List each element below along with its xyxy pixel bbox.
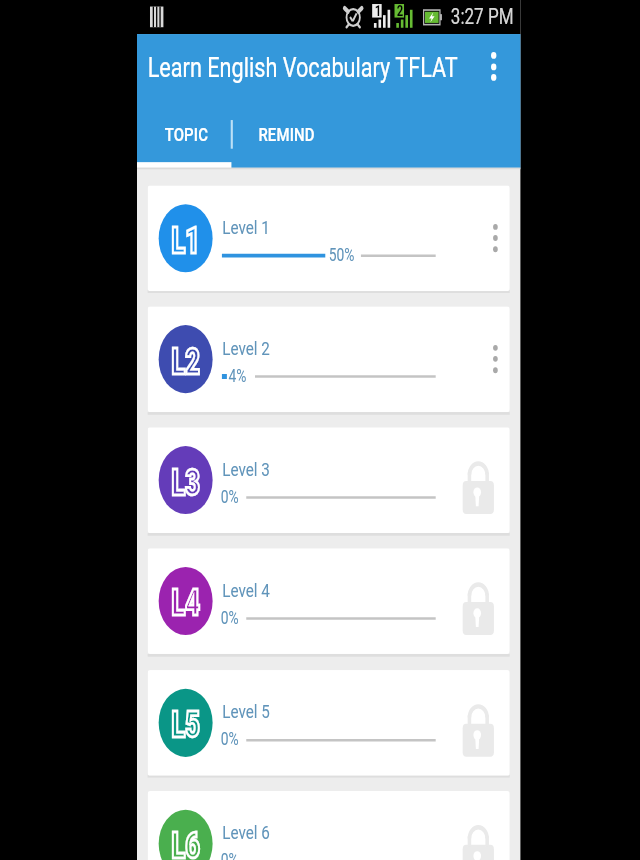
staticText: TOPIC bbox=[165, 124, 209, 146]
button[interactable]: L2 bbox=[148, 306, 510, 412]
staticText: REMIND bbox=[258, 124, 315, 146]
staticText: Level 4 bbox=[222, 579, 270, 601]
button[interactable]: L5 bbox=[148, 670, 510, 776]
staticText: Level 1 bbox=[222, 216, 270, 238]
staticText: Level 3 bbox=[222, 458, 270, 480]
button[interactable]: TOPIC bbox=[137, 133, 231, 202]
staticText: 1 bbox=[375, 3, 382, 20]
staticText: 50% bbox=[329, 245, 355, 265]
staticText: 0% bbox=[221, 486, 239, 507]
button[interactable]: Locked bbox=[463, 704, 494, 757]
staticText: Level 5 bbox=[222, 700, 270, 723]
staticText: 0% bbox=[221, 850, 239, 860]
button[interactable]: L3 bbox=[148, 427, 510, 533]
staticText: L4 bbox=[171, 580, 200, 624]
button[interactable]: L6 bbox=[148, 791, 510, 860]
staticText: 3:27 PM bbox=[451, 4, 514, 30]
button[interactable]: Locked bbox=[463, 825, 494, 860]
button[interactable]: Locked bbox=[463, 461, 494, 514]
staticText: 0% bbox=[221, 607, 239, 628]
button[interactable]: Options bbox=[478, 212, 510, 264]
button[interactable]: L1 bbox=[148, 185, 510, 291]
button[interactable]: Locked bbox=[463, 582, 494, 635]
button[interactable]: Options bbox=[478, 333, 510, 385]
button[interactable]: More options bbox=[476, 43, 511, 111]
staticText: L3 bbox=[171, 460, 200, 503]
staticText: L1 bbox=[171, 218, 200, 262]
button[interactable]: L4 bbox=[148, 548, 510, 654]
button[interactable]: REMIND bbox=[231, 133, 337, 202]
staticText: Level 6 bbox=[222, 821, 270, 844]
staticText: L2 bbox=[171, 339, 200, 382]
staticText: L5 bbox=[171, 702, 200, 746]
staticText: Level 2 bbox=[222, 337, 270, 359]
staticText: 2 bbox=[397, 3, 404, 20]
staticText: Learn English Vocabulary TFLAT bbox=[148, 52, 458, 84]
staticText: 4% bbox=[229, 365, 247, 386]
staticText: 0% bbox=[221, 729, 239, 750]
staticText: L6 bbox=[171, 823, 200, 860]
